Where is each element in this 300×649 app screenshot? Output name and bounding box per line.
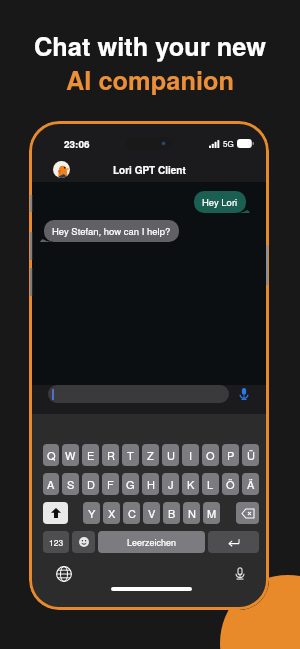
button[interactable] [43,502,68,524]
staticText: 5G [223,138,234,149]
button[interactable]: Ü [242,444,259,466]
staticText: Chat with your new [0,27,300,63]
staticText: R [107,447,115,463]
button[interactable]: Voice input [237,387,251,401]
staticText: S [67,476,75,492]
button[interactable]: 123 [43,531,69,553]
staticText: Z [147,447,154,463]
button[interactable]: Z [142,444,159,466]
button[interactable]: G [122,473,139,495]
button[interactable] [208,531,259,553]
button[interactable]: A [43,473,59,495]
button[interactable]: Ö [222,473,239,495]
button[interactable]: X [103,502,120,524]
staticText: J [168,476,174,492]
staticText: Leerzeichen [127,536,177,549]
staticText: L [207,476,214,492]
staticText: V [148,505,156,521]
button[interactable]: H [142,473,159,495]
button[interactable]: U [162,444,179,466]
button[interactable]: Y [83,502,100,524]
staticText: C [128,505,136,521]
staticText: D [87,476,95,492]
staticText: Hey Stefan, how can I help? [52,224,171,238]
staticText: T [127,447,134,463]
staticText: Y [88,505,96,521]
button[interactable] [236,502,259,524]
staticText: B [168,505,176,521]
button[interactable]: Change language [56,566,72,582]
staticText: Lori GPT Client [113,163,186,177]
button[interactable]: R [102,444,119,466]
button[interactable]: C [123,502,140,524]
staticText: Ü [247,447,255,463]
button[interactable]: I [182,444,199,466]
button[interactable]: W [62,444,79,466]
button[interactable] [48,385,229,403]
staticText: AI companion [0,61,300,97]
button[interactable]: B [163,502,180,524]
button[interactable]: K [182,473,199,495]
staticText: F [107,476,114,492]
button[interactable]: Profile [53,161,70,178]
button[interactable]: Leerzeichen [98,531,205,553]
staticText: 123 [49,536,64,548]
button[interactable]: E [82,444,99,466]
staticText: O [206,447,215,463]
staticText: P [227,447,235,463]
button[interactable]: L [202,473,219,495]
staticText: K [187,476,195,492]
button[interactable]: V [143,502,160,524]
staticText: W [65,447,76,463]
button[interactable]: O [202,444,219,466]
staticText: I [189,447,193,463]
button[interactable]: Q [43,444,59,466]
staticText: E [87,447,95,463]
staticText: Ö [226,476,235,492]
button[interactable]: D [82,473,99,495]
staticText: U [167,447,175,463]
button[interactable] [72,531,95,553]
button[interactable]: P [222,444,239,466]
button[interactable]: Hey Stefan, how can I help? [40,220,179,242]
staticText: Ä [247,476,255,492]
button[interactable]: N [183,502,200,524]
button[interactable]: Hey Lori [194,191,250,213]
button[interactable]: S [62,473,79,495]
staticText: H [147,476,155,492]
button[interactable]: F [102,473,119,495]
button[interactable]: M [203,502,220,524]
button[interactable]: Ä [242,473,259,495]
button[interactable]: J [162,473,179,495]
staticText: G [126,476,135,492]
staticText: X [108,505,116,521]
staticText: Q [47,447,56,463]
staticText: Hey Lori [202,195,238,209]
button[interactable]: Dictation [232,566,248,582]
staticText: M [207,505,217,521]
staticText: N [188,505,196,521]
button[interactable]: T [122,444,139,466]
staticText: 23:06 [64,137,90,151]
staticText: A [47,476,55,492]
